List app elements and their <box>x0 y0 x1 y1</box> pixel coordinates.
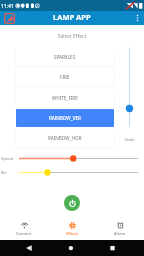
button[interactable]: WHITE_FIRE <box>16 89 114 107</box>
button[interactable]: SPARKLES <box>16 48 114 66</box>
staticText: Connect <box>16 231 32 236</box>
button[interactable]: Effects <box>48 218 96 240</box>
button[interactable]: Bri slider <box>17 167 140 178</box>
button[interactable]: RAINBOW_HOR <box>16 129 114 147</box>
staticText: LAMP APP <box>53 12 91 22</box>
button[interactable]: Scale slider <box>122 45 137 130</box>
staticText: Select Effect <box>0 33 144 40</box>
staticText: Speed <box>1 156 14 162</box>
button[interactable]: FIRE <box>16 68 114 86</box>
staticText: WHITE_FIRE <box>52 95 78 101</box>
staticText: FIRE <box>60 74 70 80</box>
staticText: Bri <box>1 170 7 176</box>
button[interactable]: App icon <box>4 13 15 24</box>
button[interactable]: Connect <box>0 218 48 240</box>
staticText: Scale <box>120 137 139 143</box>
button[interactable]: Alarm <box>96 218 144 240</box>
button[interactable]: More options <box>132 12 144 24</box>
button[interactable]: RAINBOW_VER <box>16 109 114 127</box>
staticText: Effects <box>66 231 79 236</box>
staticText: Alarm <box>114 231 126 236</box>
staticText: 11:41 <box>1 3 14 10</box>
staticText: RAINBOW_HOR <box>48 135 82 141</box>
staticText: SPARKLES <box>54 54 76 60</box>
button[interactable]: Power <box>64 195 80 211</box>
staticText: RAINBOW_VER <box>49 115 81 121</box>
button[interactable]: Speed slider <box>17 153 140 164</box>
